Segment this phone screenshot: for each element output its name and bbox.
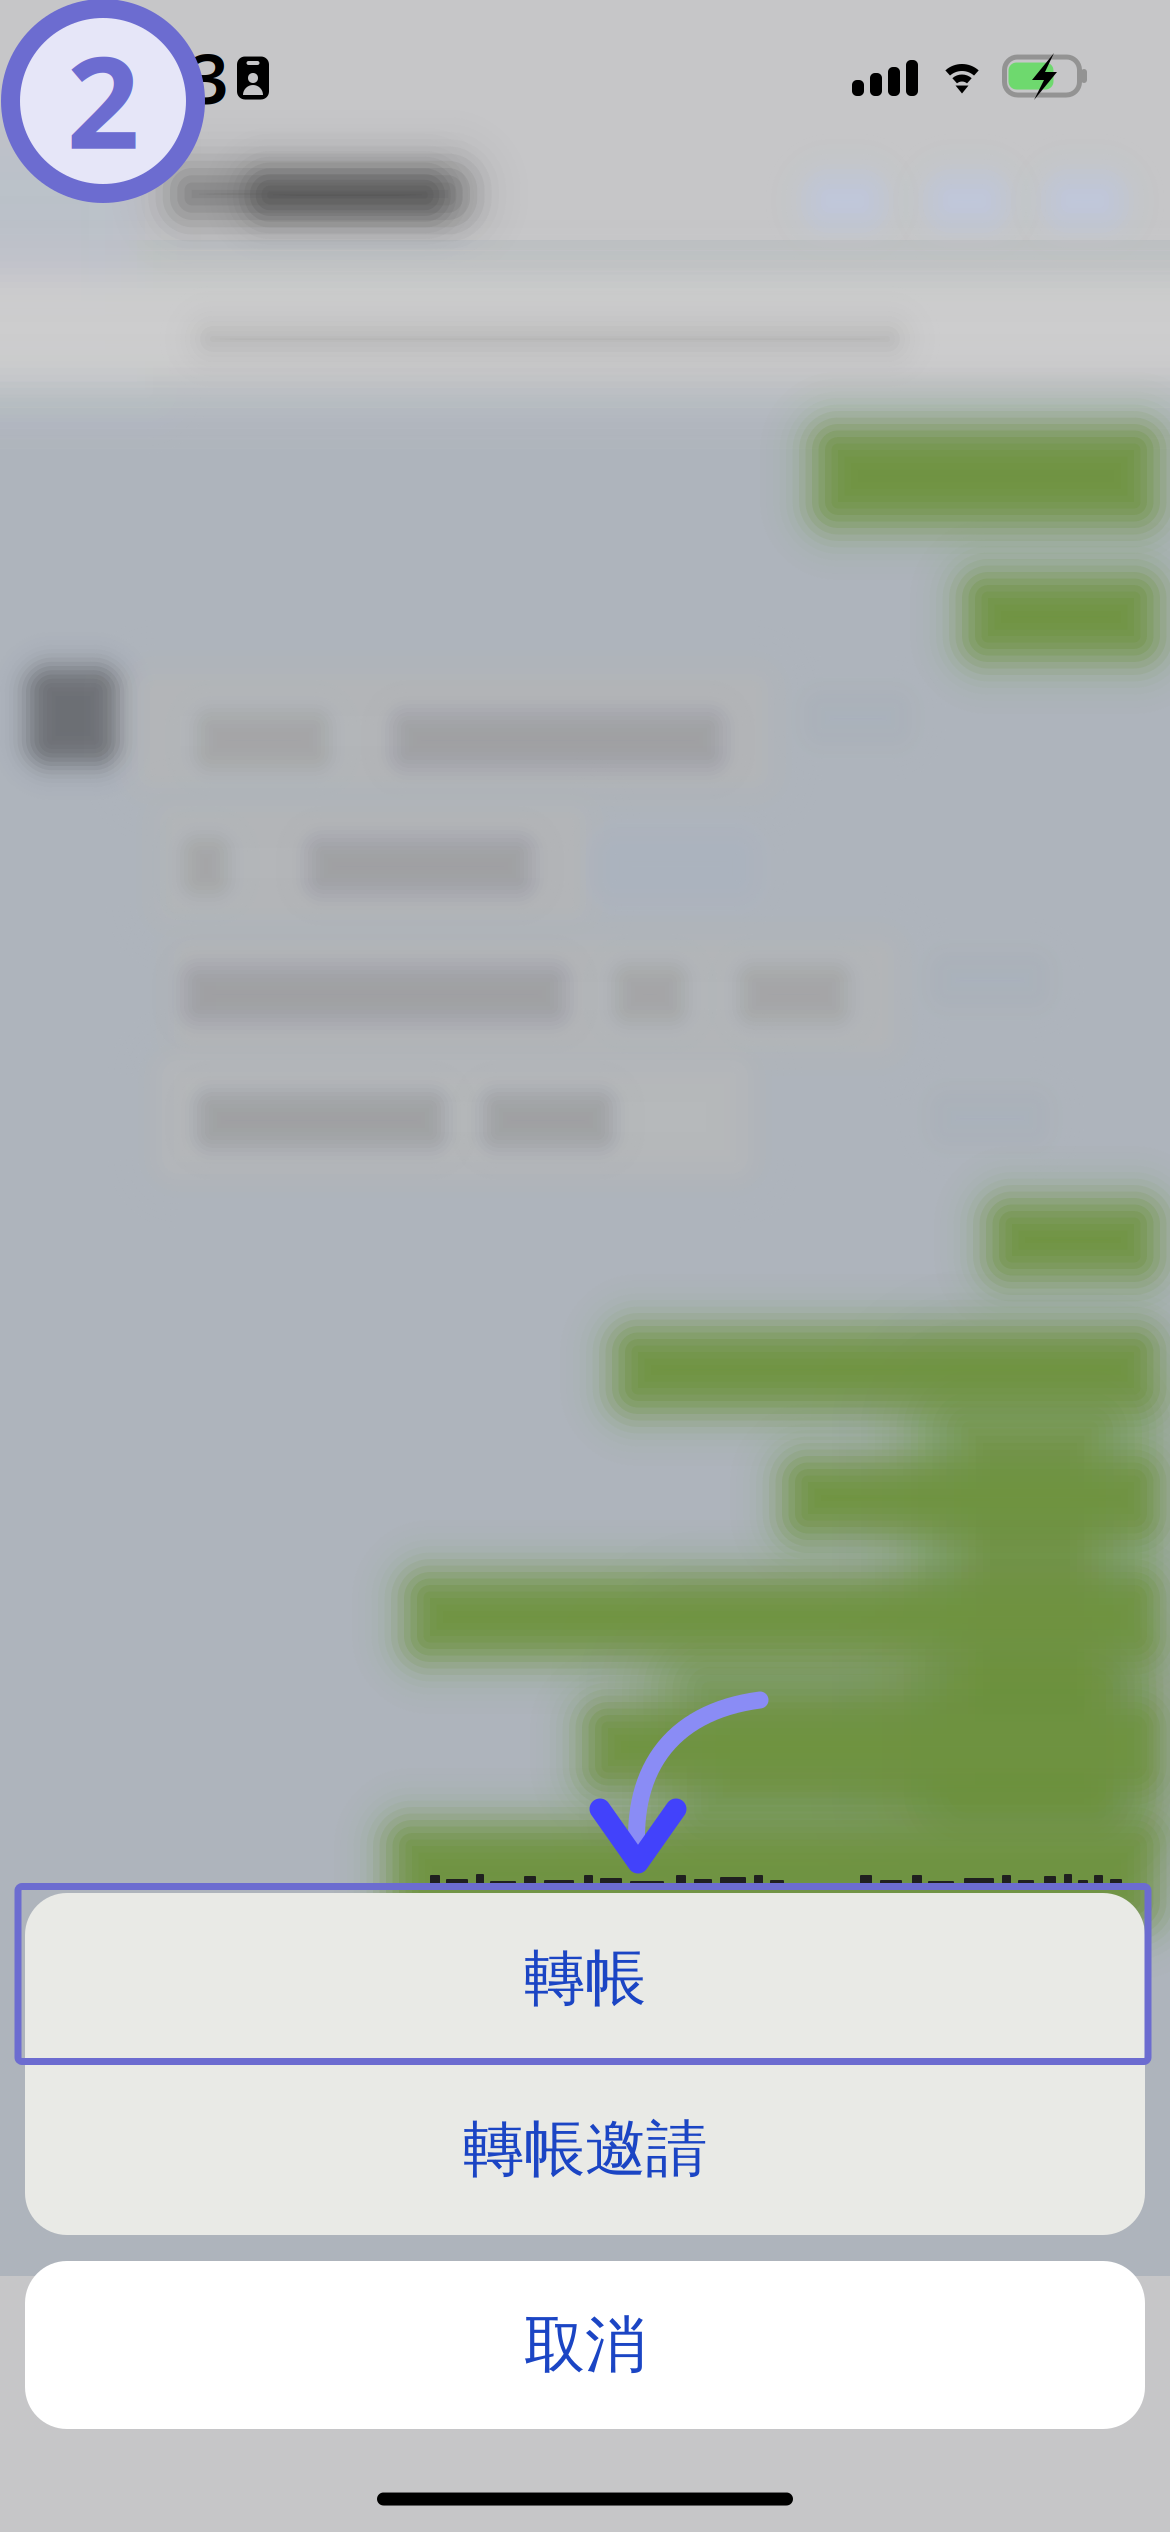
staticText: 2: [66, 14, 139, 184]
staticText: 取消: [524, 2307, 646, 2383]
button[interactable]: 轉帳邀請: [25, 2063, 1145, 2234]
staticText: 3: [189, 31, 229, 123]
staticText: 轉帳: [524, 1940, 646, 2016]
button[interactable]: 取消: [25, 2261, 1145, 2429]
staticText: 轉帳邀請: [463, 2111, 707, 2187]
button[interactable]: 轉帳: [25, 1892, 1145, 2063]
